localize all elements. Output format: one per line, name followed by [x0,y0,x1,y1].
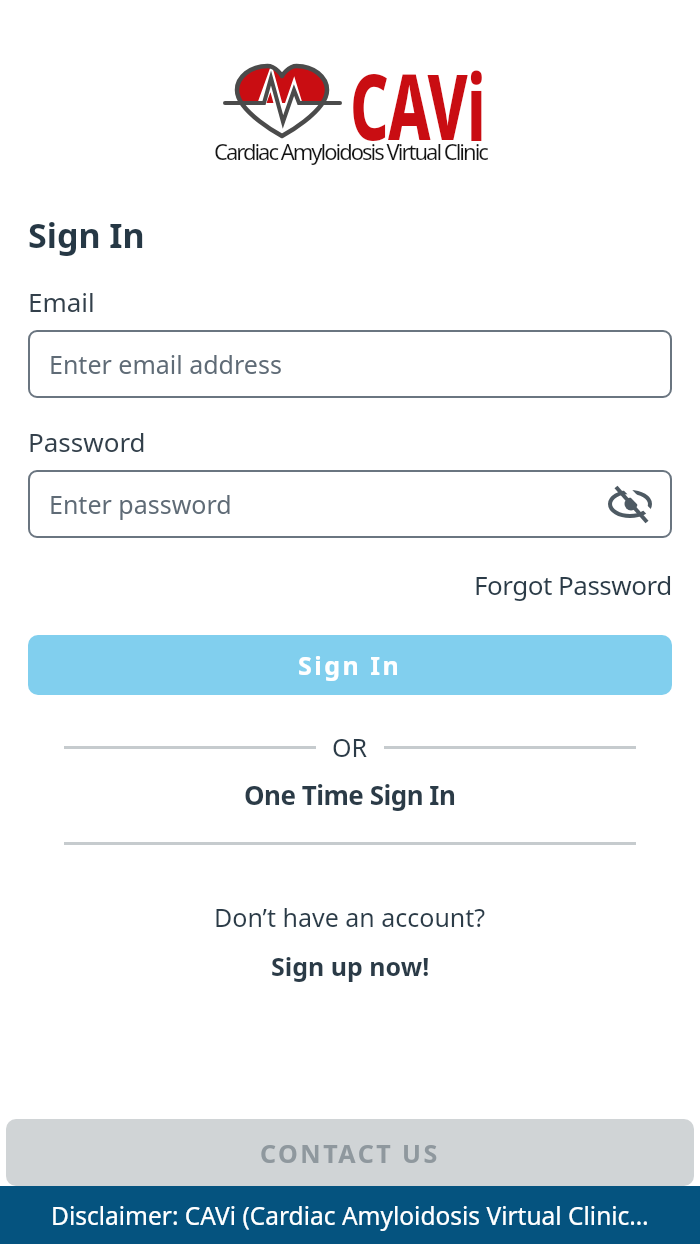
staticText: Sign In [298,648,402,682]
staticText: Don’t have an account? [214,900,486,934]
staticText: Cardiac Amyloidosis Virtual Clinic [214,136,487,166]
staticText: CONTACT US [260,1136,440,1170]
staticText: Enter password [49,487,232,521]
staticText: Sign In [28,212,145,258]
staticText: Email [28,284,95,319]
button[interactable]: CONTACT US [6,1119,694,1186]
button[interactable]: Forgot Password [474,567,672,602]
staticText: Password [28,424,146,459]
staticText: OR [332,730,368,764]
staticText: Disclaimer: CAVi (Cardiac Amyloidosis Vi… [51,1199,649,1232]
button[interactable]: Enter password [28,470,672,538]
staticText: CAVi [350,43,485,167]
button[interactable]: Sign up now! [271,949,430,983]
button[interactable]: Enter email address [28,330,672,398]
button[interactable]: One Time Sign In [244,777,456,812]
button[interactable]: Disclaimer: CAVi (Cardiac Amyloidosis Vi… [0,1186,700,1244]
button[interactable]: Sign In [28,635,672,695]
staticText: Enter email address [49,347,282,381]
